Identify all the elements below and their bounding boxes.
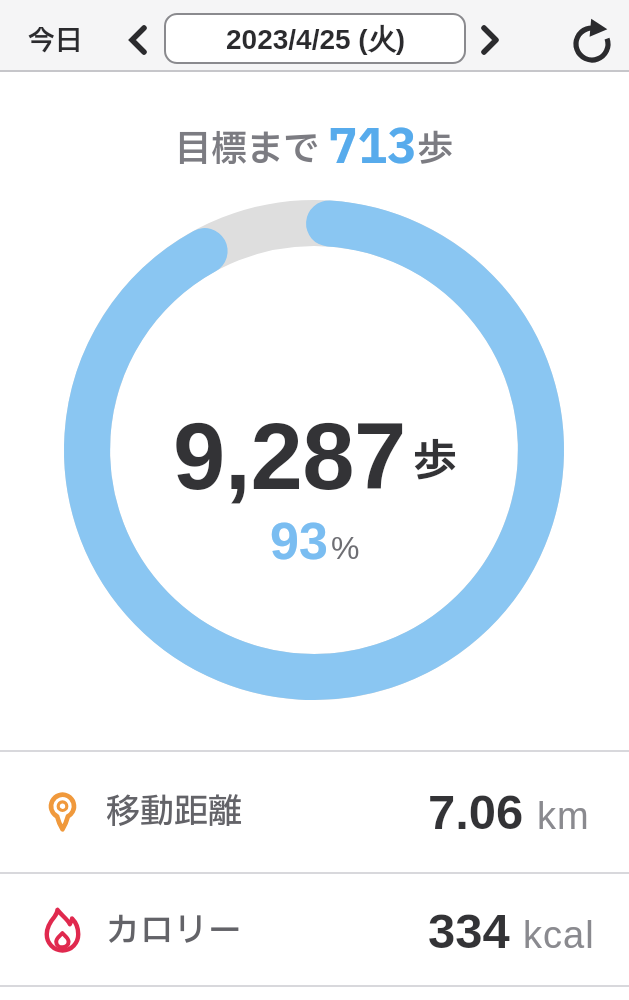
staticText: 334 [428,904,510,959]
button[interactable] [122,24,154,56]
staticText: 歩 [417,123,454,177]
button[interactable] [474,24,506,56]
staticText: 歩 [413,429,457,495]
button[interactable]: カロリー [0,874,629,985]
staticText: 7.06 [428,785,524,840]
staticText: km [537,795,590,837]
staticText: 目標まで [175,123,328,177]
button[interactable]: 2023/4/25 (火) [164,13,466,64]
staticText: 9,287 [173,404,406,509]
staticText: カロリー [106,906,242,957]
staticText: % [331,530,360,566]
staticText: 2023/4/25 (火) [226,22,405,57]
button[interactable]: 今日 [20,13,90,69]
staticText: 93 [270,512,328,570]
staticText: 移動距離 [106,787,242,838]
staticText: kcal [523,914,595,956]
button[interactable]: 移動距離 [0,752,629,872]
staticText: 713 [328,113,417,183]
staticText: 今日 [28,21,82,61]
button[interactable] [570,21,614,65]
